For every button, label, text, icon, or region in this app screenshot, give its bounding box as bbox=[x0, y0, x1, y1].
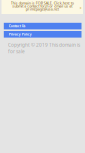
staticText: This domain is FOR SALE. Click here to bbox=[11, 0, 74, 5]
staticText: Contact Us bbox=[9, 24, 26, 28]
button[interactable]: Privacy Policy bbox=[4, 31, 81, 38]
staticText: primepage@usa.net bbox=[26, 6, 59, 11]
staticText: Privacy Policy bbox=[9, 32, 32, 36]
button[interactable]: This domain is FOR SALE. Click here to bbox=[1, 0, 83, 14]
staticText: Copyright © 2019 This domain is for sale bbox=[8, 42, 80, 55]
button[interactable]: Contact Us bbox=[4, 23, 81, 29]
staticText: submit a contact form or email us at bbox=[12, 3, 72, 8]
